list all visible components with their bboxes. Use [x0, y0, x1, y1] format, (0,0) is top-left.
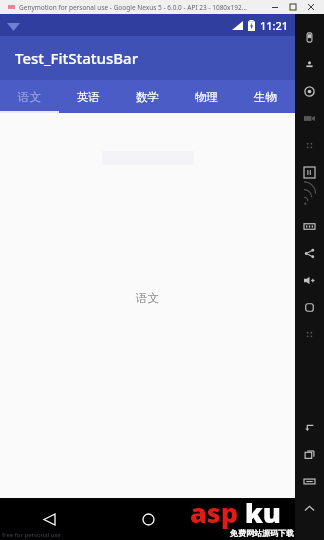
button[interactable]: Identifiers [295, 159, 324, 186]
button[interactable]: Maximize [284, 0, 302, 14]
button[interactable]: Back [295, 414, 324, 441]
button[interactable]: Network [295, 186, 324, 213]
button[interactable]: Video [295, 105, 324, 132]
button[interactable]: Back [0, 498, 98, 540]
button[interactable]: More [295, 321, 324, 348]
button[interactable]: 物理 [177, 80, 236, 113]
staticText: 数学 [136, 90, 159, 104]
staticText: 语文 [18, 90, 41, 104]
button[interactable]: Rotate [295, 294, 324, 321]
button[interactable]: Share [295, 240, 324, 267]
button[interactable]: Home [295, 495, 324, 522]
staticText: 生物 [254, 90, 277, 104]
button[interactable]: GPS [295, 51, 324, 78]
button[interactable]: Home [118, 498, 178, 540]
button[interactable]: SMS [295, 213, 324, 240]
button[interactable]: Recents [295, 441, 324, 468]
staticText: asp [190, 494, 239, 531]
staticText: Test_FitStatusBar [15, 48, 139, 68]
staticText: ku [245, 494, 281, 531]
button[interactable]: 生物 [236, 80, 295, 113]
button[interactable]: Battery [295, 24, 324, 51]
button[interactable]: Keypad [295, 132, 324, 159]
staticText: 11:21 [260, 18, 289, 33]
button[interactable]: Close [302, 0, 320, 14]
button[interactable]: Volume up [295, 267, 324, 294]
button[interactable]: Camera [295, 78, 324, 105]
staticText: 英语 [77, 90, 100, 104]
staticText: 物理 [195, 90, 218, 104]
button[interactable]: Menu [295, 468, 324, 495]
button[interactable]: 语文 [0, 80, 59, 113]
button[interactable]: 数学 [118, 80, 177, 113]
button[interactable]: 英语 [59, 80, 118, 113]
button[interactable]: Minimize [266, 0, 284, 14]
staticText: 语文 [136, 291, 159, 305]
staticText: Genymotion for personal use - Google Nex… [19, 3, 247, 12]
staticText: 免费网站源码下载 [230, 528, 294, 538]
staticText: free for personal use [2, 531, 61, 539]
